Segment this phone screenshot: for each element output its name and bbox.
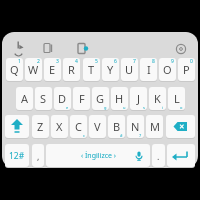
button[interactable]: N (127, 115, 144, 138)
button[interactable]: O (159, 58, 176, 81)
button[interactable]: J (130, 87, 147, 110)
staticText: U (125, 62, 134, 77)
button[interactable]: Y (102, 58, 119, 81)
button[interactable]: A (16, 87, 33, 110)
button[interactable]: G (92, 87, 109, 110)
staticText: g (104, 105, 107, 110)
button[interactable]: . (152, 144, 165, 167)
staticText: ‹ İngilizce › (81, 151, 116, 161)
staticText: 4 (75, 58, 78, 65)
staticText: Y (107, 62, 114, 77)
button[interactable]: D (54, 87, 71, 110)
staticText: s (143, 105, 145, 110)
button[interactable]: , (32, 144, 44, 167)
staticText: 8 (152, 58, 155, 65)
button[interactable] (5, 115, 29, 138)
staticText: H (115, 91, 124, 106)
staticText: B (113, 119, 121, 134)
button[interactable]: H (111, 87, 128, 110)
staticText: M (150, 119, 160, 134)
staticText: 6 (114, 58, 117, 65)
staticText: F (79, 91, 85, 106)
staticText: c (83, 133, 85, 138)
staticText: I (147, 62, 151, 77)
staticText: # (120, 133, 123, 138)
button[interactable]: X (51, 115, 68, 138)
button[interactable]: P (178, 58, 195, 81)
staticText: 5 (95, 58, 98, 65)
staticText: 3 (56, 58, 59, 65)
button[interactable] (167, 144, 195, 167)
button[interactable]: B (108, 115, 125, 138)
button[interactable]: U (121, 58, 138, 81)
staticText: R (68, 62, 75, 77)
staticText: , (37, 150, 40, 162)
staticText: T (88, 62, 95, 77)
staticText: 7 (133, 58, 136, 65)
staticText: 2 (37, 58, 40, 65)
staticText: K (154, 91, 161, 106)
staticText: E (49, 62, 56, 77)
button[interactable]: W (25, 58, 42, 81)
button[interactable] (76, 42, 89, 55)
staticText: D (58, 91, 67, 106)
button[interactable]: C (70, 115, 87, 138)
staticText: O (163, 62, 172, 77)
staticText: . (157, 150, 160, 162)
staticText: W (28, 62, 39, 77)
button[interactable]: K (149, 87, 166, 110)
staticText: J (137, 91, 141, 106)
staticText: X (56, 119, 63, 134)
button[interactable]: Z (32, 115, 49, 138)
button[interactable]: E (44, 58, 61, 81)
staticText: N (131, 119, 140, 134)
button[interactable]: F (73, 87, 90, 110)
staticText: A (21, 91, 29, 106)
staticText: G (96, 91, 105, 106)
button[interactable]: Q (6, 58, 23, 81)
button[interactable]: T (83, 58, 100, 81)
button[interactable] (166, 115, 195, 138)
button[interactable]: I (140, 58, 157, 81)
staticText: o (180, 105, 183, 110)
staticText: 7 (139, 133, 142, 138)
staticText: Z (37, 119, 44, 134)
button[interactable] (42, 42, 54, 54)
button[interactable]: L (168, 87, 185, 110)
button[interactable]: M (146, 115, 163, 138)
button[interactable]: ‹ İngilizce › (46, 144, 150, 167)
button[interactable]: V (89, 115, 106, 138)
staticText: S (40, 91, 47, 106)
button[interactable] (174, 42, 188, 56)
button[interactable]: R (63, 58, 80, 81)
staticText: V (94, 119, 101, 134)
staticText: C (75, 119, 82, 134)
staticText: 1 (18, 58, 21, 65)
staticText: P (183, 62, 190, 77)
button[interactable]: 12# (5, 144, 29, 167)
button[interactable]: S (35, 87, 52, 110)
staticText: L (174, 91, 180, 106)
staticText: u (123, 105, 126, 110)
staticText: 9 (171, 58, 174, 65)
button[interactable] (11, 38, 29, 56)
staticText: Q (10, 62, 19, 77)
staticText: 0 (190, 58, 193, 65)
staticText: 12# (9, 150, 25, 162)
staticText: i (162, 105, 164, 110)
staticText: e (66, 105, 69, 110)
